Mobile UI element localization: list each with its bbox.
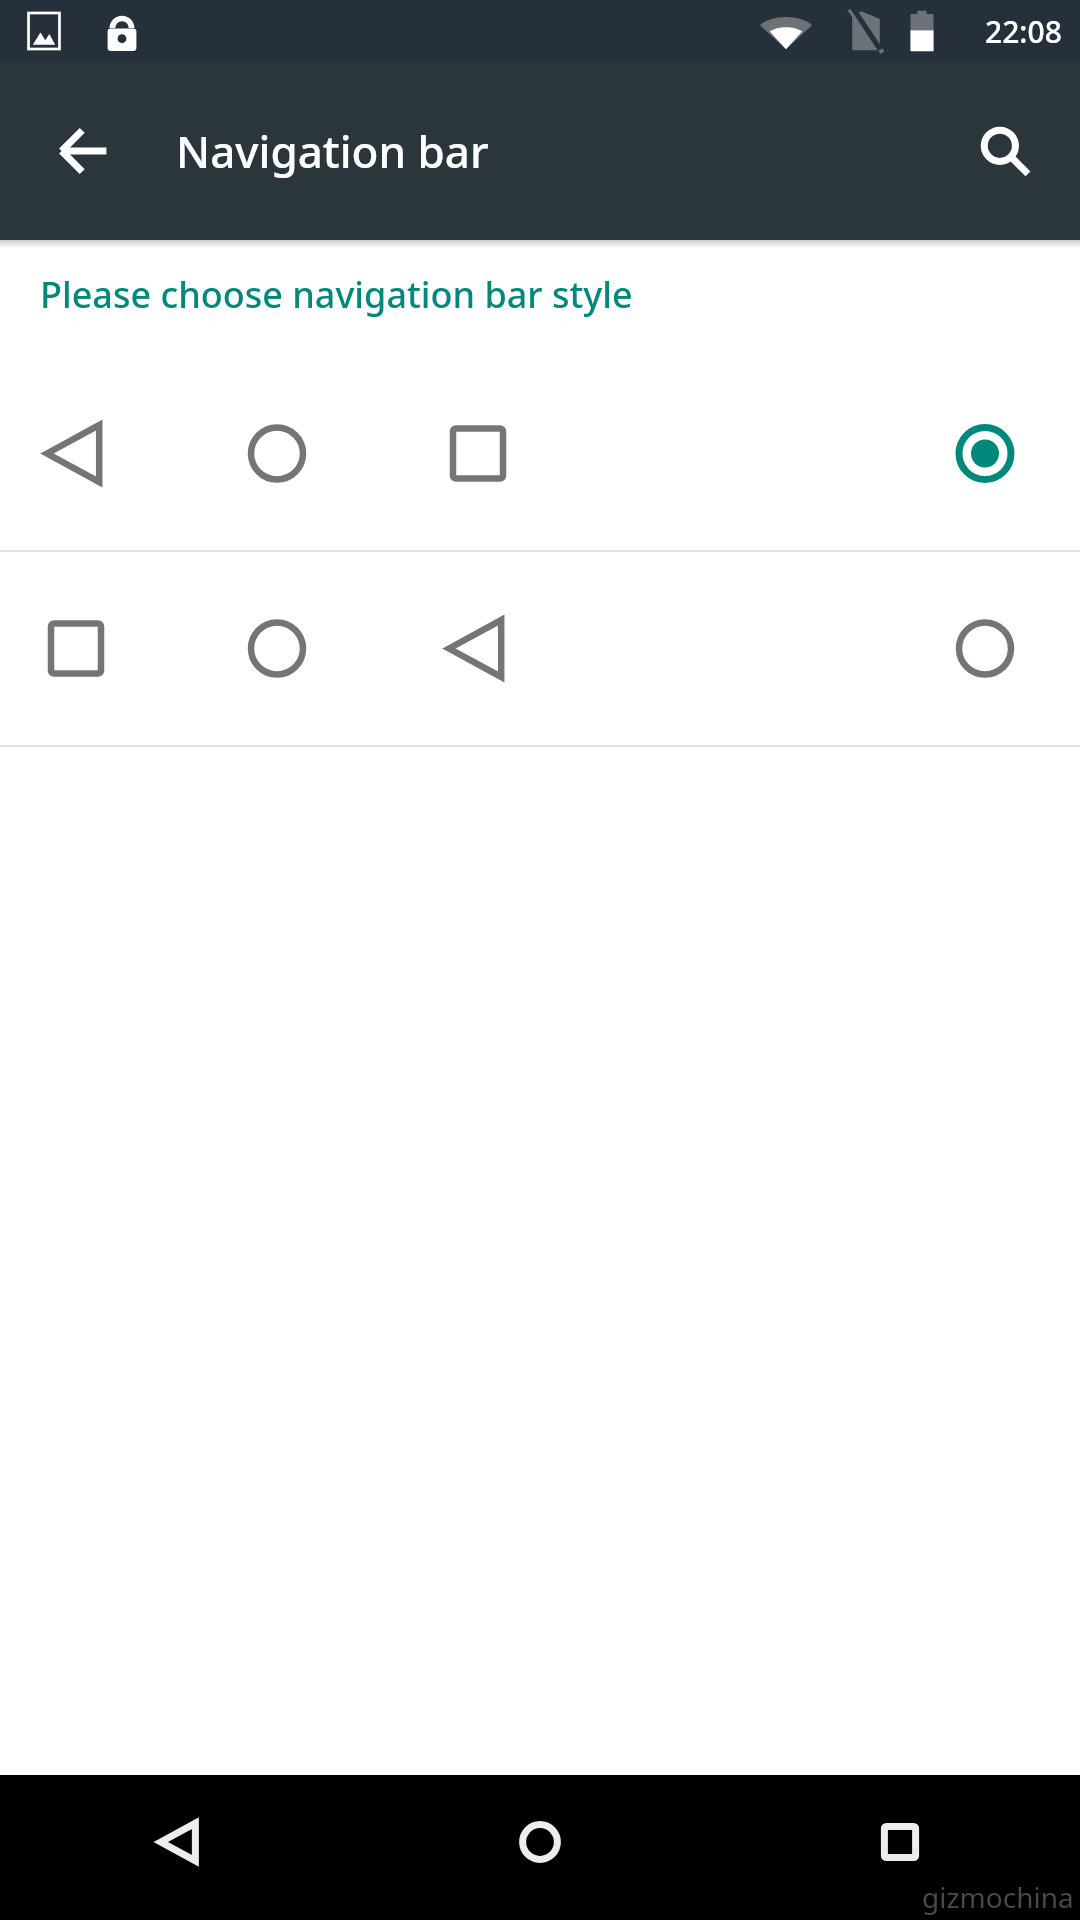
- staticText: Navigation bar: [176, 121, 489, 181]
- button[interactable]: Recent apps: [720, 1775, 1080, 1920]
- staticText: 22:08: [985, 11, 1062, 52]
- button[interactable]: Back: [0, 1775, 360, 1920]
- button[interactable]: Back: [28, 95, 140, 207]
- staticText: Please choose navigation bar style: [40, 270, 633, 319]
- staticText: gizmochina: [922, 1878, 1074, 1916]
- button[interactable]: Navigation bar style, selected: [0, 357, 1080, 550]
- button[interactable]: Search: [952, 99, 1056, 203]
- button[interactable]: Navigation bar style: [0, 552, 1080, 745]
- button[interactable]: Home: [360, 1775, 720, 1920]
